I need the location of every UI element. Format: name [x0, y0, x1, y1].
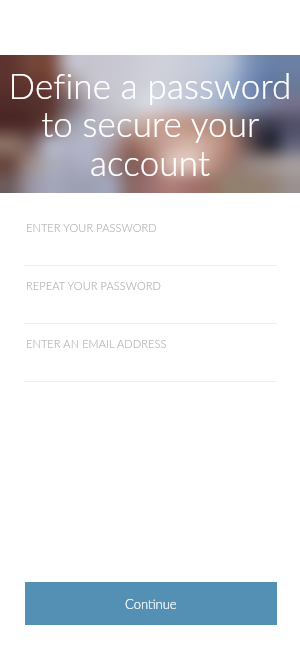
staticText: Continue — [125, 596, 177, 612]
staticText: REPEAT YOUR PASSWORD — [26, 279, 162, 292]
button[interactable]: ENTER YOUR PASSWORD — [0, 221, 300, 279]
button[interactable]: ENTER AN EMAIL ADDRESS — [0, 337, 300, 395]
staticText: ENTER AN EMAIL ADDRESS — [26, 337, 167, 350]
button[interactable]: Continue — [25, 582, 277, 625]
staticText: ENTER YOUR PASSWORD — [26, 221, 157, 234]
staticText: Define a password to secure your account — [6, 64, 294, 184]
button[interactable]: REPEAT YOUR PASSWORD — [0, 279, 300, 337]
